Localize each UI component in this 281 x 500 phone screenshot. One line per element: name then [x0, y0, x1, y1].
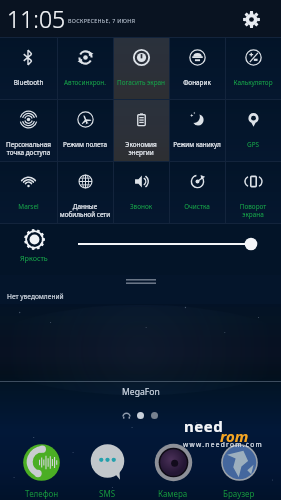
- staticText: Камера: [158, 488, 188, 499]
- staticText: Поворот экрана: [226, 202, 280, 219]
- staticText: Marsel: [1, 202, 56, 211]
- staticText: MegaFon: [122, 386, 160, 398]
- button[interactable]: Поворот экрана: [225, 161, 281, 223]
- staticText: Звонок: [114, 202, 168, 211]
- button[interactable]: Brightness: [18, 229, 50, 263]
- staticText: Калькулятор: [226, 78, 280, 87]
- button[interactable]: Калькулятор: [225, 37, 281, 99]
- button[interactable]: Камера: [140, 426, 206, 500]
- button[interactable]: Bluetooth: [0, 37, 57, 99]
- button[interactable]: Очистка: [169, 161, 225, 223]
- button[interactable]: Звонок: [113, 161, 169, 223]
- staticText: Автосинхрон.: [58, 78, 112, 87]
- button[interactable]: Экономия энергии: [113, 99, 169, 161]
- button[interactable]: Телефон: [9, 426, 74, 500]
- button[interactable]: Settings: [239, 7, 263, 31]
- staticText: Очистка: [170, 202, 224, 211]
- button[interactable]: Режим каникул: [169, 99, 225, 161]
- button[interactable]: Режим полета: [57, 99, 113, 161]
- staticText: ВОСКРЕСЕНЬЕ, 7 ИЮНЯ: [68, 17, 136, 24]
- button[interactable]: Данные мобильной сети: [57, 161, 113, 223]
- staticText: Персональная точка доступа: [1, 140, 56, 157]
- button[interactable]: Фонарик: [169, 37, 225, 99]
- staticText: Фонарик: [170, 78, 224, 87]
- button[interactable]: SMS: [74, 426, 140, 500]
- staticText: Bluetooth: [1, 78, 56, 87]
- button[interactable]: GPS: [225, 99, 281, 161]
- button[interactable]: Погасить экран: [113, 37, 169, 99]
- button[interactable]: Браузер: [206, 426, 272, 500]
- button[interactable]: Персональная точка доступа: [0, 99, 57, 161]
- staticText: need: [184, 416, 224, 436]
- staticText: Нет уведомлений: [7, 292, 64, 301]
- button[interactable]: Marsel: [0, 161, 57, 223]
- staticText: rom: [220, 426, 249, 446]
- staticText: Браузер: [223, 488, 255, 499]
- button[interactable]: Автосинхрон.: [57, 37, 113, 99]
- staticText: Данные мобильной сети: [58, 202, 112, 219]
- staticText: Режим полета: [58, 140, 112, 149]
- staticText: 11:05: [7, 3, 66, 34]
- staticText: SMS: [99, 488, 116, 499]
- staticText: Телефон: [25, 488, 59, 499]
- staticText: Яркость: [20, 253, 48, 263]
- staticText: Погасить экран: [114, 78, 168, 87]
- staticText: Режим каникул: [170, 140, 224, 149]
- staticText: Экономия энергии: [114, 140, 168, 157]
- staticText: www.needrom.com: [183, 440, 263, 449]
- staticText: GPS: [226, 140, 280, 149]
